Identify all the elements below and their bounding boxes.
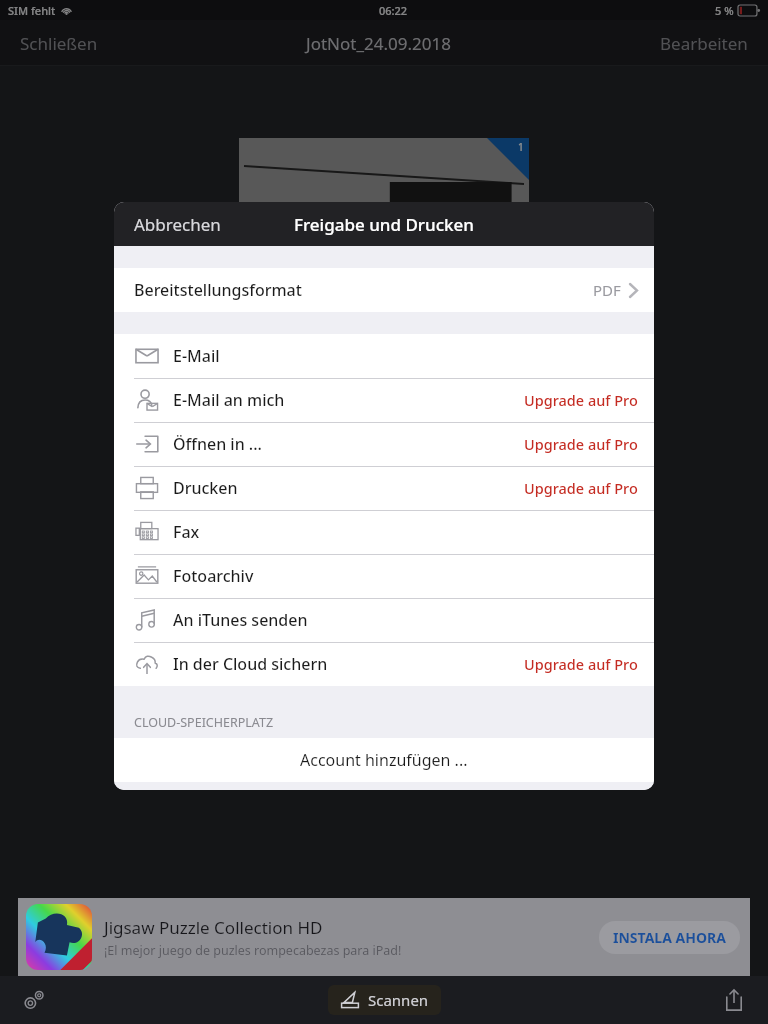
staticText: JotNot_24.09.2018 bbox=[306, 32, 451, 55]
staticText: Fax bbox=[173, 521, 200, 543]
staticText: Bearbeiten bbox=[660, 32, 748, 55]
button[interactable]: Bearbeiten bbox=[658, 26, 750, 61]
staticText: PDF bbox=[593, 280, 621, 300]
staticText: ¡El mejor juego de puzles rompecabezas p… bbox=[104, 942, 402, 959]
staticText: Upgrade auf Pro bbox=[524, 654, 638, 674]
button[interactable]: Fotoarchiv bbox=[114, 554, 654, 598]
staticText: 06:22 bbox=[379, 3, 408, 18]
staticText: Freigabe und Drucken bbox=[294, 213, 474, 236]
staticText: CLOUD-SPEICHERPLATZ bbox=[134, 714, 274, 731]
staticText: Account hinzufügen ... bbox=[300, 749, 468, 771]
staticText: Upgrade auf Pro bbox=[524, 434, 638, 454]
button[interactable]: In der Cloud sichern bbox=[114, 642, 654, 686]
staticText: E-Mail an mich bbox=[173, 389, 285, 411]
staticText: 1 bbox=[518, 140, 524, 154]
button[interactable]: Drucken bbox=[114, 466, 654, 510]
staticText: Jigsaw Puzzle Collection HD bbox=[104, 916, 323, 939]
button[interactable]: INSTALA AHORA bbox=[599, 921, 740, 954]
staticText: Upgrade auf Pro bbox=[524, 478, 638, 498]
button[interactable]: Bereitstellungsformat bbox=[114, 268, 654, 312]
button[interactable]: An iTunes senden bbox=[114, 598, 654, 642]
staticText: Bereitstellungsformat bbox=[134, 279, 302, 301]
button[interactable]: Einstellungen bbox=[14, 980, 54, 1020]
button[interactable]: Fax bbox=[114, 510, 654, 554]
staticText: In der Cloud sichern bbox=[173, 653, 328, 675]
button[interactable]: E-Mail bbox=[114, 334, 654, 378]
button[interactable]: Schließen bbox=[18, 26, 100, 61]
button[interactable]: Scannen bbox=[328, 985, 441, 1015]
button[interactable]: 1 bbox=[239, 138, 529, 338]
button[interactable]: Öffnen in ... bbox=[114, 422, 654, 466]
staticText: E-Mail bbox=[173, 345, 220, 367]
staticText: An iTunes senden bbox=[173, 609, 308, 631]
staticText: Schließen bbox=[20, 32, 98, 55]
staticText: Öffnen in ... bbox=[173, 433, 262, 455]
staticText: SIM fehlt bbox=[8, 3, 56, 18]
button[interactable]: Abbrechen bbox=[114, 205, 231, 244]
staticText: Scannen bbox=[368, 990, 429, 1010]
staticText: Fotoarchiv bbox=[173, 565, 254, 587]
staticText: INSTALA AHORA bbox=[613, 928, 726, 947]
button[interactable]: Teilen bbox=[714, 980, 754, 1020]
staticText: 5 % bbox=[715, 3, 734, 18]
button[interactable]: E-Mail an mich bbox=[114, 378, 654, 422]
button[interactable]: Jigsaw Puzzle Collection HD bbox=[18, 898, 750, 976]
staticText: Upgrade auf Pro bbox=[524, 390, 638, 410]
staticText: Abbrechen bbox=[134, 213, 221, 236]
staticText: Drucken bbox=[173, 477, 238, 499]
button[interactable]: Account hinzufügen ... bbox=[114, 738, 654, 782]
